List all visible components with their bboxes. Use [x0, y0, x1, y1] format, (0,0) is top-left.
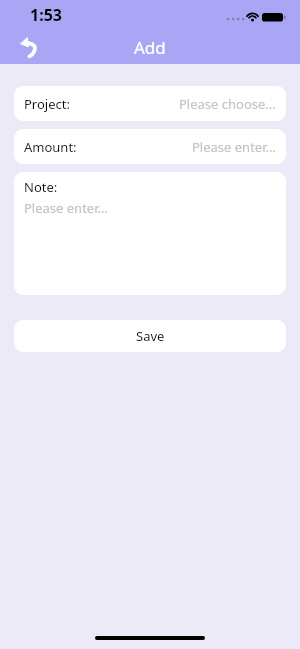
staticText: Note: — [24, 178, 58, 196]
button[interactable]: Amount: — [14, 129, 286, 164]
staticText: Add — [134, 36, 166, 59]
button[interactable]: Project: — [14, 86, 286, 121]
staticText: Please enter... — [24, 199, 108, 217]
staticText: 1:53 — [30, 4, 62, 26]
button[interactable]: Note: — [14, 172, 286, 295]
staticText: Please enter... — [192, 138, 276, 156]
staticText: Please choose... — [179, 95, 276, 113]
staticText: Amount: — [24, 138, 77, 156]
staticText: Project: — [24, 95, 70, 113]
staticText: Save — [136, 327, 165, 345]
button[interactable] — [16, 33, 44, 61]
button[interactable]: Save — [14, 320, 286, 352]
